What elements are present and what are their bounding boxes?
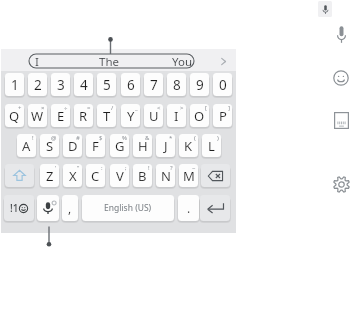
button[interactable]: Emoji [333,70,349,86]
button[interactable]: 5 [97,73,116,96]
button[interactable]: , [62,195,78,221]
staticText: X [69,167,77,185]
staticText: $ [99,134,103,142]
button[interactable]: M [179,164,198,187]
staticText: ? [170,164,173,172]
staticText: ' [55,164,57,172]
staticText: . [187,200,191,216]
button[interactable]: P [213,104,232,127]
staticText: W [31,107,44,125]
button[interactable]: Microphone [336,26,347,43]
staticText: 0 [219,76,227,94]
staticText: O [194,107,205,125]
button[interactable]: Symbols and emoji [4,195,34,221]
button[interactable]: V [110,164,129,187]
button[interactable]: I [15,54,59,68]
button[interactable]: 7 [144,73,163,96]
staticText: < [157,104,161,112]
staticText: ; [125,164,127,172]
button[interactable]: X [63,164,82,187]
button[interactable]: A [17,134,36,157]
button[interactable]: More suggestions [214,52,232,70]
button[interactable]: Shift [5,164,34,187]
staticText: _ [135,104,138,112]
button[interactable]: 2 [28,73,47,96]
staticText: 4 [80,76,88,94]
button[interactable]: F [86,134,105,157]
button[interactable]: T [97,104,116,127]
button[interactable]: L [202,134,221,157]
staticText: ( [194,134,196,142]
button[interactable]: K [179,134,198,157]
staticText: & [145,134,150,142]
button[interactable]: Backspace [201,164,230,187]
staticText: You [172,54,192,68]
button[interactable]: Keyboard [334,112,349,129]
button[interactable]: I [167,104,186,127]
button[interactable]: E [51,104,70,127]
staticText: English (US) [104,202,152,214]
staticText: ÷ [64,104,68,112]
staticText: 9 [196,76,204,94]
staticText: > [180,104,184,112]
button[interactable]: G [110,134,129,157]
staticText: 3 [57,76,65,94]
button[interactable]: . [178,195,199,221]
button[interactable]: 8 [167,73,186,96]
button[interactable]: C [86,164,105,187]
staticText: [ [205,104,207,112]
staticText: Y [127,107,135,125]
staticText: D [68,137,78,155]
button[interactable]: Voice input [37,195,59,221]
button[interactable]: 3 [51,73,70,96]
button[interactable]: Z [40,164,59,187]
button[interactable]: J [156,134,175,157]
staticText: 5 [103,76,111,94]
staticText: E [57,107,65,125]
button[interactable]: 0 [213,73,232,96]
staticText: % [122,134,127,142]
button[interactable]: 6 [121,73,140,96]
button[interactable]: English (US) [82,195,174,221]
staticText: @ [51,134,57,142]
staticText: F [92,137,99,155]
button[interactable]: The [87,54,131,68]
button[interactable]: O [190,104,209,127]
button[interactable]: Y [121,104,140,127]
button[interactable]: Settings [333,176,350,192]
staticText: + [18,104,22,112]
staticText: * [169,134,173,142]
staticText: 2 [34,76,42,94]
button[interactable]: S [40,134,59,157]
staticText: N [161,167,171,185]
button[interactable]: Enter [200,195,230,221]
staticText: / [111,104,114,112]
button[interactable]: R [74,104,93,127]
staticText: G [115,137,125,155]
staticText: ! [32,134,34,142]
staticText: !1 [10,201,19,215]
button[interactable]: 9 [190,73,209,96]
button[interactable]: 1 [5,73,24,96]
button[interactable]: W [28,104,47,127]
staticText: A [22,137,31,155]
button[interactable]: U [144,104,163,127]
staticText: 6 [127,76,135,94]
button[interactable]: N [156,164,175,187]
button[interactable]: Q [5,104,24,127]
staticText: L [208,137,215,155]
staticText: H [138,137,148,155]
button[interactable]: D [63,134,82,157]
staticText: V [116,167,124,185]
staticText: C [91,167,100,185]
staticText: ) [217,134,219,142]
staticText: T [103,107,111,125]
staticText: 8 [173,76,181,94]
button[interactable]: 4 [74,73,93,96]
button[interactable]: Voice key [318,1,332,17]
button[interactable]: H [133,134,152,157]
button[interactable]: You [160,54,204,68]
staticText: 7 [150,76,158,94]
staticText: M [183,167,195,185]
button[interactable]: B [133,164,152,187]
